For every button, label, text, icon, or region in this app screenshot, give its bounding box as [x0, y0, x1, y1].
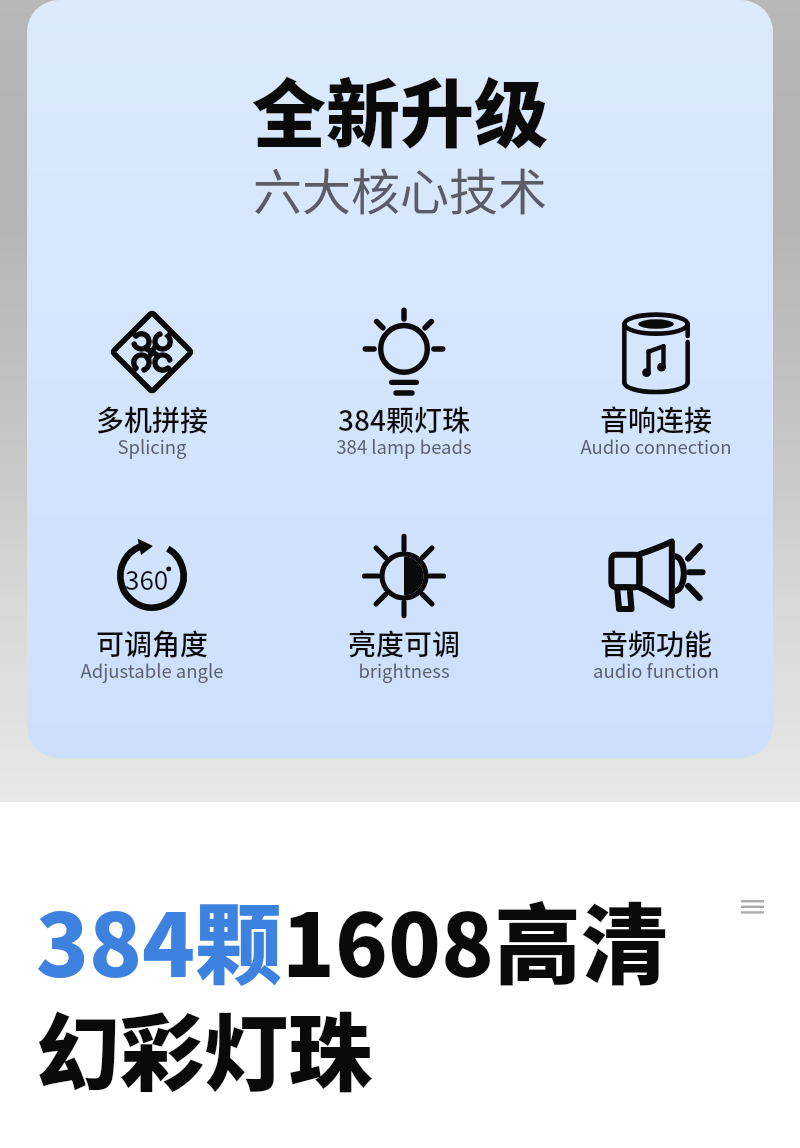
button[interactable]: 亮度可调 [278, 529, 530, 689]
staticText: 多机拼接 [27, 399, 278, 440]
staticText: 1608高清 [282, 876, 668, 1002]
staticText: 384 lamp beads [278, 433, 530, 460]
staticText: 幻彩灯珠 [36, 987, 373, 1109]
button[interactable]: 音响连接 [530, 305, 773, 465]
staticText: 可调角度 [27, 623, 278, 664]
button[interactable]: Menu [728, 883, 776, 931]
button[interactable]: 384颗灯珠 [278, 305, 530, 465]
staticText: Splicing [27, 433, 278, 460]
staticText: 亮度可调 [278, 623, 530, 664]
staticText: Adjustable angle [27, 657, 278, 684]
staticText: brightness [278, 657, 530, 684]
staticText: 音频功能 [530, 623, 773, 664]
staticText: 全新升级 [27, 55, 773, 162]
staticText: 384颗 [36, 876, 282, 1002]
staticText: 六大核心技术 [27, 153, 773, 224]
button[interactable]: 音频功能 [530, 529, 773, 689]
staticText: 384颗灯珠 [278, 399, 530, 440]
staticText: 360 [125, 560, 169, 598]
button[interactable]: 360 [27, 529, 278, 689]
button[interactable]: 多机拼接 [27, 305, 278, 465]
staticText: audio function [530, 657, 773, 684]
staticText: Audio connection [530, 433, 773, 460]
staticText: 音响连接 [530, 399, 773, 440]
